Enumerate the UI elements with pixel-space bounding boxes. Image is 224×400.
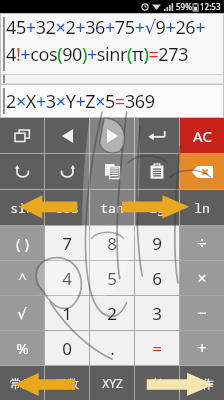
button[interactable]: Paste	[135, 154, 179, 189]
button[interactable]: =	[135, 331, 179, 365]
staticText: 7	[62, 232, 72, 255]
staticText: 5	[107, 267, 117, 290]
button[interactable]: 8	[90, 226, 134, 260]
button[interactable]: tan	[90, 190, 134, 225]
button[interactable]: Sound	[135, 366, 179, 400]
button[interactable]: 常量	[0, 366, 44, 400]
staticText: ÷	[197, 232, 207, 254]
staticText: cos	[55, 199, 79, 217]
button[interactable]: +	[180, 331, 224, 365]
staticText: 8	[107, 232, 117, 255]
button[interactable]: Copy	[90, 154, 134, 189]
button[interactable]: 45+32×2+36+75+√9+26+	[1, 14, 223, 75]
staticText: AC	[193, 126, 212, 146]
button[interactable]: ( )	[0, 226, 44, 260]
button[interactable]: ln	[180, 190, 224, 225]
button[interactable]: 7	[45, 226, 89, 260]
button[interactable]: 操作	[180, 366, 224, 400]
staticText: 函数	[55, 376, 79, 391]
button[interactable]: 3	[135, 296, 179, 330]
button[interactable]: Cursor left	[45, 118, 89, 153]
staticText: 常量	[10, 376, 34, 391]
button[interactable]: Redo	[45, 154, 89, 189]
button[interactable]: 0	[45, 331, 89, 365]
staticText: lg	[149, 199, 165, 217]
button[interactable]: 2	[90, 296, 134, 330]
staticText: ln	[194, 199, 210, 217]
button[interactable]: ×	[180, 261, 224, 295]
staticText: 3	[152, 302, 162, 325]
staticText: sin	[10, 199, 34, 217]
button[interactable]: 2×X+3×Y+Z×5=369	[1, 85, 223, 117]
button[interactable]: 4	[45, 261, 89, 295]
button[interactable]: AC	[180, 118, 224, 153]
button[interactable]: Windows	[0, 118, 44, 153]
button[interactable]: cos	[45, 190, 89, 225]
staticText: ( )	[16, 233, 29, 253]
staticText: 1	[62, 302, 72, 325]
button[interactable]: %	[0, 331, 44, 365]
button[interactable]: 1	[45, 296, 89, 330]
button[interactable]: ^	[0, 261, 44, 295]
staticText: %	[16, 338, 29, 358]
button[interactable]: 9	[135, 226, 179, 260]
staticText: tan	[100, 199, 124, 217]
staticText: 操作	[190, 376, 214, 391]
staticText: 6	[152, 267, 162, 290]
button[interactable]: Cursor right	[90, 118, 134, 153]
staticText: 9	[152, 232, 162, 255]
staticText: 59%	[176, 1, 192, 12]
button[interactable]: 5	[90, 261, 134, 295]
staticText: 2	[107, 302, 117, 325]
button[interactable]: √	[0, 296, 44, 330]
staticText: 2×X+3×Y+Z×5=369	[6, 89, 155, 114]
button[interactable]: −	[180, 296, 224, 330]
staticText: .	[110, 337, 115, 360]
staticText: 12:53	[200, 1, 221, 12]
button[interactable]: sin	[0, 190, 44, 225]
staticText: +	[197, 337, 207, 359]
button[interactable]: Delete	[180, 154, 224, 189]
button[interactable]: 6	[135, 261, 179, 295]
button[interactable]: ÷	[180, 226, 224, 260]
staticText: 4!+cos(90)+sinr(π)=273	[6, 42, 189, 67]
staticText: 45+32×2+36+75+√9+26+	[6, 15, 206, 40]
staticText: ^	[18, 268, 27, 288]
staticText: ×	[197, 267, 207, 289]
button[interactable]: XYZ	[90, 366, 134, 400]
staticText: XYZ	[102, 375, 123, 391]
staticText: −	[197, 302, 207, 324]
button[interactable]: .	[90, 331, 134, 365]
staticText: √	[17, 305, 27, 322]
staticText: 0	[62, 337, 72, 360]
staticText: =	[152, 337, 162, 360]
button[interactable]: lg	[135, 190, 179, 225]
staticText: 4	[62, 267, 72, 290]
button[interactable]: Enter	[135, 118, 179, 153]
button[interactable]: Undo	[0, 154, 44, 189]
button[interactable]: 函数	[45, 366, 89, 400]
